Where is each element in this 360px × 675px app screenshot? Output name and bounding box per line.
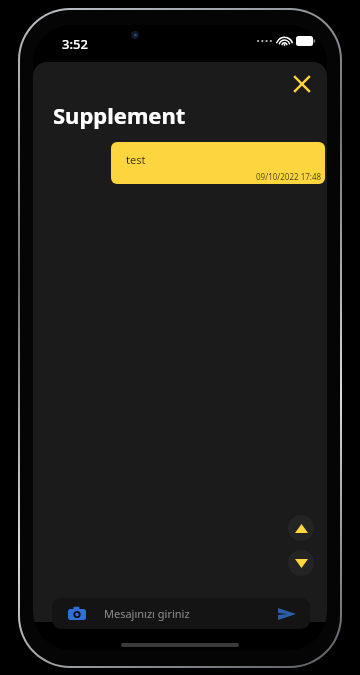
staticText: 3:52	[62, 35, 88, 53]
button[interactable]: Close	[285, 67, 319, 101]
button[interactable]: Camera	[52, 598, 310, 629]
button[interactable]: Send	[276, 603, 298, 625]
staticText: 09/10/2022 17:48	[256, 171, 322, 182]
staticText: Supplement	[53, 100, 186, 130]
button[interactable]: Camera	[68, 605, 86, 623]
button[interactable]: test	[111, 142, 325, 184]
button[interactable]: Scroll up	[288, 515, 314, 541]
button[interactable]: Scroll down	[288, 550, 314, 576]
staticText: Mesajınızı giriniz	[104, 606, 190, 621]
staticText: test	[126, 152, 146, 167]
